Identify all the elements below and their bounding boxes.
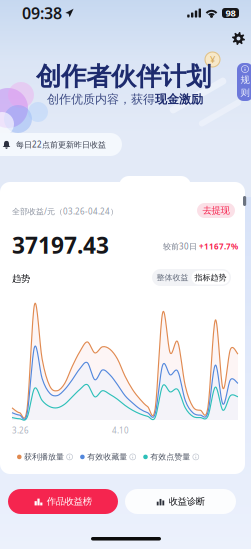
button[interactable]: 累计	[184, 178, 245, 199]
staticText: 现金激励	[155, 92, 203, 107]
staticText: 获利播放量	[24, 452, 64, 462]
button[interactable]: 设置	[228, 28, 249, 49]
staticText: 较前30日	[163, 241, 197, 252]
staticText: 创作者伙伴计划	[36, 61, 211, 92]
button[interactable]: 作品收益榜	[8, 489, 118, 514]
staticText: 09:38	[22, 2, 62, 24]
staticText: 作品收益榜	[47, 496, 92, 507]
button[interactable]: 前日	[0, 178, 61, 199]
staticText: 整体收益	[156, 273, 188, 282]
staticText: 收益诊断	[169, 496, 205, 507]
staticText: 全部收益/元（03.26-04.24）	[12, 206, 118, 217]
staticText: 37197.43	[12, 230, 109, 260]
staticText: 去提现	[202, 205, 229, 216]
staticText: 有效点赞量	[150, 452, 190, 462]
staticText: ¥	[210, 53, 215, 66]
staticText: 规	[240, 74, 249, 85]
staticText: 指标趋势	[194, 273, 226, 282]
button[interactable]: 收益诊断	[125, 489, 236, 514]
staticText: 每日22点前更新昨日收益	[16, 139, 106, 150]
button[interactable]: 规	[237, 63, 251, 101]
button[interactable]: 整体收益	[153, 270, 191, 284]
button[interactable]: 指标趋势	[191, 270, 229, 284]
staticText: 98	[225, 7, 235, 19]
staticText: 4.10	[112, 425, 129, 436]
button[interactable]: 近7日	[61, 178, 122, 199]
staticText: 创作优质内容，获得	[47, 92, 155, 107]
staticText: +1167.7%	[199, 241, 238, 252]
staticText: 趋势	[12, 273, 30, 284]
staticText: 有效收藏量	[87, 452, 127, 462]
staticText: 3.26	[12, 425, 29, 436]
button[interactable]: 去提现	[197, 203, 235, 218]
staticText: 则	[240, 87, 249, 98]
